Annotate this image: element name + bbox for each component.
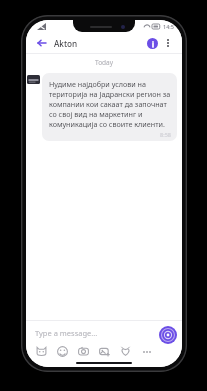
button[interactable]: More options [161,36,175,50]
button[interactable]: Info [145,36,159,50]
staticText: Нудиме најдобри услови на територија на … [49,79,171,129]
button[interactable]: Back [33,35,49,51]
button[interactable]: Нудиме најдобри услови на територија на … [42,73,177,141]
staticText: 14:5 [163,23,174,30]
button[interactable]: Emoji [56,345,69,358]
button[interactable]: Send [159,326,177,344]
button[interactable]: Camera [77,345,90,358]
button[interactable]: Gallery [98,345,111,358]
button[interactable]: GIF [119,345,132,358]
staticText: 8:58 [49,131,171,138]
staticText: Akton Communications t… [54,38,142,49]
staticText: Today [26,58,182,67]
button[interactable]: Sender avatar [27,75,40,84]
button[interactable]: Type a message... [35,328,141,338]
button[interactable]: More [140,345,153,358]
button[interactable]: Stickers [35,345,48,358]
